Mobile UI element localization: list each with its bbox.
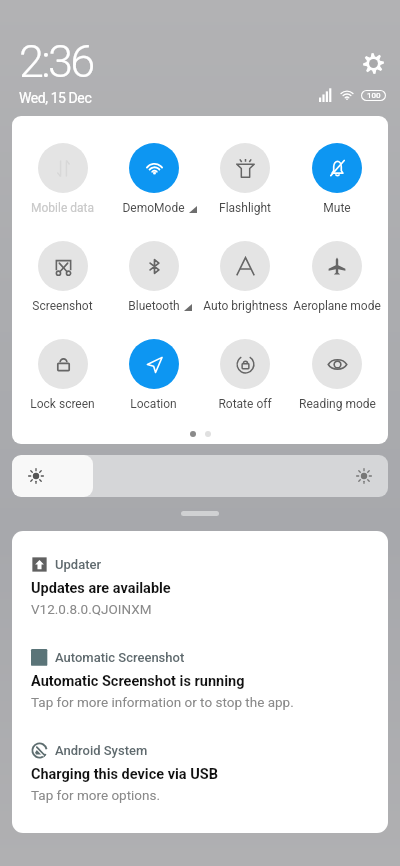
button[interactable]: Location [108,339,199,411]
button[interactable]: Settings [357,47,389,79]
staticText: Automatic Screenshot [55,650,185,665]
staticText: Lock screen [30,397,95,411]
staticText: Rotate off [218,397,272,411]
button[interactable]: Auto brightness [199,241,291,313]
staticText: DemoMode [122,201,185,215]
button[interactable]: Aeroplane mode [291,241,383,313]
button[interactable]: Rotate off [199,339,291,411]
button[interactable]: Lock screen [17,339,108,411]
button[interactable]: Mobile data [17,143,108,215]
staticText: Wed, 15 Dec [19,90,92,106]
staticText: Bluetooth [128,299,180,313]
button[interactable]: Automatic Screenshot [31,649,372,710]
button[interactable]: Brightness [12,455,388,497]
staticText: 2:36 [19,35,93,88]
button[interactable]: Mute [291,143,383,215]
button[interactable]: Android System [31,742,372,803]
staticText: Mute [323,201,351,215]
staticText: 100 [367,91,381,100]
staticText: Flashlight [219,201,271,215]
button[interactable]: Updater [31,556,372,617]
staticText: Aeroplane mode [293,299,381,313]
staticText: Automatic Screenshot is running [31,673,245,690]
staticText: Tap for more options. [31,787,161,803]
button[interactable]: DemoMode [108,143,199,215]
staticText: Screenshot [32,299,93,313]
staticText: Location [130,397,177,411]
staticText: Updater [55,557,102,572]
staticText: Tap for more information or to stop the … [31,694,294,710]
button[interactable]: Flashlight [199,143,291,215]
staticText: Charging this device via USB [31,766,218,783]
staticText: V12.0.8.0.QJOINXM [31,601,152,617]
button[interactable]: Reading mode [291,339,383,411]
staticText: Mobile data [31,201,94,215]
staticText: Android System [55,743,148,758]
staticText: Updates are available [31,580,171,597]
staticText: Auto brightness [203,299,288,313]
staticText: Reading mode [299,397,376,411]
button[interactable]: Bluetooth [108,241,199,313]
button[interactable]: Screenshot [17,241,108,313]
